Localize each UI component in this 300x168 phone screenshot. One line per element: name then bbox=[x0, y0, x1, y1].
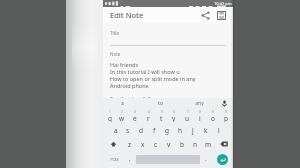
button[interactable]: . bbox=[201, 151, 211, 167]
staticText: a bbox=[121, 100, 124, 107]
staticText: f bbox=[153, 126, 156, 135]
button[interactable]: 7 bbox=[181, 110, 193, 122]
button[interactable]: s bbox=[122, 124, 134, 136]
button[interactable]: 1 bbox=[104, 110, 115, 122]
staticText: any bbox=[195, 100, 204, 107]
button[interactable]: Share bbox=[198, 8, 212, 22]
staticText: k bbox=[204, 126, 208, 135]
button[interactable]: any bbox=[180, 98, 219, 109]
staticText: h bbox=[178, 126, 183, 135]
staticText: l bbox=[218, 126, 220, 135]
button[interactable]: c bbox=[150, 138, 162, 150]
staticText: g bbox=[165, 126, 169, 135]
button[interactable]: j bbox=[187, 124, 199, 136]
staticText: 10:42 pm bbox=[214, 1, 232, 6]
button[interactable]: h bbox=[174, 124, 186, 136]
button[interactable]: 9 bbox=[207, 110, 219, 122]
staticText: y bbox=[172, 114, 176, 122]
staticText: For that just follow me bbox=[110, 95, 168, 98]
staticText: i bbox=[199, 114, 201, 122]
staticText: e bbox=[133, 114, 137, 122]
button[interactable]: Shift bbox=[104, 137, 122, 151]
button[interactable]: 8 bbox=[194, 110, 206, 122]
staticText: , bbox=[129, 155, 131, 163]
staticText: 3 bbox=[134, 110, 136, 114]
staticText: x bbox=[141, 140, 145, 149]
staticText: Edit Note bbox=[110, 10, 144, 20]
button[interactable]: k bbox=[200, 124, 212, 136]
staticText: . bbox=[205, 155, 207, 163]
staticText: c bbox=[154, 140, 158, 149]
staticText: 9 bbox=[212, 110, 214, 114]
button[interactable]: Backspace bbox=[215, 137, 232, 151]
staticText: 7 bbox=[187, 110, 189, 114]
staticText: Android phone bbox=[110, 82, 149, 89]
staticText: 1 bbox=[109, 110, 111, 114]
staticText: b bbox=[180, 140, 184, 149]
staticText: w bbox=[119, 114, 125, 122]
staticText: o bbox=[211, 114, 215, 122]
staticText: How to open or split mode in any bbox=[110, 75, 196, 82]
button[interactable]: 0 bbox=[220, 110, 232, 122]
button[interactable]: Voice input bbox=[219, 98, 230, 109]
staticText: q bbox=[108, 114, 112, 122]
staticText: d bbox=[139, 126, 143, 135]
staticText: u bbox=[185, 114, 190, 122]
staticText: s bbox=[126, 126, 130, 135]
button[interactable]: l bbox=[213, 124, 225, 136]
staticText: m bbox=[205, 140, 212, 149]
staticText: 6 bbox=[173, 110, 175, 114]
button[interactable]: z bbox=[123, 138, 136, 150]
staticText: t bbox=[160, 114, 163, 122]
button[interactable]: 5 bbox=[155, 110, 167, 122]
button[interactable]: 3 bbox=[129, 110, 141, 122]
button[interactable]: a bbox=[103, 98, 141, 109]
button[interactable]: 6 bbox=[168, 110, 180, 122]
button[interactable]: Save bbox=[214, 8, 228, 22]
button[interactable]: n bbox=[189, 138, 201, 150]
button[interactable]: 2 bbox=[116, 110, 128, 122]
staticText: z bbox=[128, 140, 132, 149]
staticText: r bbox=[147, 114, 150, 122]
staticText: n bbox=[193, 140, 198, 149]
button[interactable]: Enter bbox=[217, 154, 228, 165]
staticText: 5 bbox=[161, 110, 163, 114]
button[interactable]: d bbox=[135, 124, 147, 136]
button[interactable]: x bbox=[137, 138, 149, 150]
staticText: to bbox=[158, 100, 163, 107]
staticText: 8 bbox=[199, 110, 201, 114]
button[interactable]: ?123 bbox=[104, 151, 124, 167]
staticText: Note bbox=[110, 51, 121, 57]
staticText: In this tutorial I will show u bbox=[110, 68, 180, 75]
staticText: 2 bbox=[121, 110, 123, 114]
staticText: ?123 bbox=[110, 157, 119, 162]
button[interactable]: f bbox=[148, 124, 160, 136]
staticText: Title bbox=[110, 30, 119, 36]
staticText: Hai friends bbox=[110, 61, 139, 68]
button[interactable]: g bbox=[161, 124, 173, 136]
button[interactable]: a bbox=[110, 124, 121, 136]
staticText: p bbox=[224, 114, 228, 122]
staticText: 4 bbox=[148, 110, 150, 114]
staticText: j bbox=[192, 126, 194, 135]
button[interactable]: m bbox=[202, 138, 214, 150]
button[interactable]: v bbox=[163, 138, 175, 150]
staticText: v bbox=[167, 140, 171, 149]
button[interactable]: , bbox=[125, 151, 135, 167]
staticText: a bbox=[114, 126, 118, 135]
button[interactable]: 4 bbox=[142, 110, 154, 122]
button[interactable]: to bbox=[141, 98, 180, 109]
staticText: 0 bbox=[225, 110, 227, 114]
button[interactable]: b bbox=[176, 138, 188, 150]
